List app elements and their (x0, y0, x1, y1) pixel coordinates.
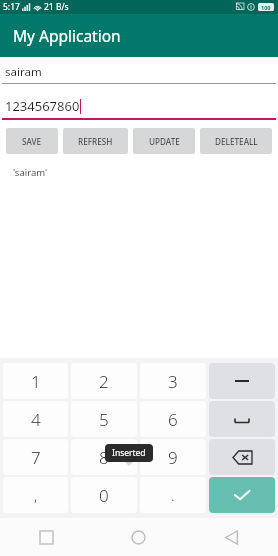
button[interactable]: 5 (71, 401, 137, 437)
button[interactable]: SAVE (6, 128, 58, 154)
button[interactable]: 0 (71, 477, 137, 513)
button[interactable]: 1 (3, 363, 68, 399)
staticText: My Application (13, 25, 121, 46)
staticText: 5:17 (3, 1, 20, 13)
staticText: sairam (5, 64, 42, 80)
button[interactable]: 4 (3, 401, 68, 437)
staticText: SAVE (22, 136, 42, 147)
staticText: 21 B/s (44, 1, 69, 13)
staticText: , (34, 485, 38, 505)
staticText: 9 (168, 446, 178, 469)
button[interactable]: Minus (209, 363, 275, 399)
button[interactable]: 3 (140, 363, 206, 399)
staticText: DELETEALL (215, 136, 258, 147)
button[interactable]: 7 (3, 439, 68, 475)
button[interactable]: , (3, 477, 68, 513)
staticText: 7 (31, 446, 41, 469)
button[interactable]: 9 (140, 439, 206, 475)
staticText: . (171, 485, 175, 505)
staticText: 4 (31, 408, 41, 431)
staticText: 'sairam' (13, 166, 48, 179)
button[interactable]: Back (185, 518, 278, 556)
button[interactable]: 2 (71, 363, 137, 399)
staticText: REFRESH (78, 136, 113, 147)
button[interactable]: Home (92, 518, 185, 556)
button[interactable]: 8 (71, 439, 137, 475)
staticText: Inserted (112, 447, 146, 459)
staticText: 1 (31, 370, 41, 393)
button[interactable]: Space (209, 401, 275, 437)
button[interactable]: 6 (140, 401, 206, 437)
staticText: UPDATE (149, 136, 180, 147)
staticText: 6 (168, 408, 178, 431)
staticText: 5 (99, 408, 109, 431)
button[interactable]: Recents (0, 518, 92, 556)
button[interactable]: Delete (209, 439, 275, 475)
button[interactable]: Enter (209, 477, 275, 513)
button[interactable]: REFRESH (63, 128, 128, 154)
staticText: 100 (261, 4, 271, 11)
staticText: 0 (99, 484, 109, 507)
button[interactable]: DELETEALL (200, 128, 272, 154)
staticText: 1234567860 (5, 97, 80, 115)
staticText: 2 (99, 370, 109, 393)
staticText: 8 (99, 446, 109, 469)
button[interactable]: UPDATE (133, 128, 195, 154)
staticText: 3 (168, 370, 178, 393)
